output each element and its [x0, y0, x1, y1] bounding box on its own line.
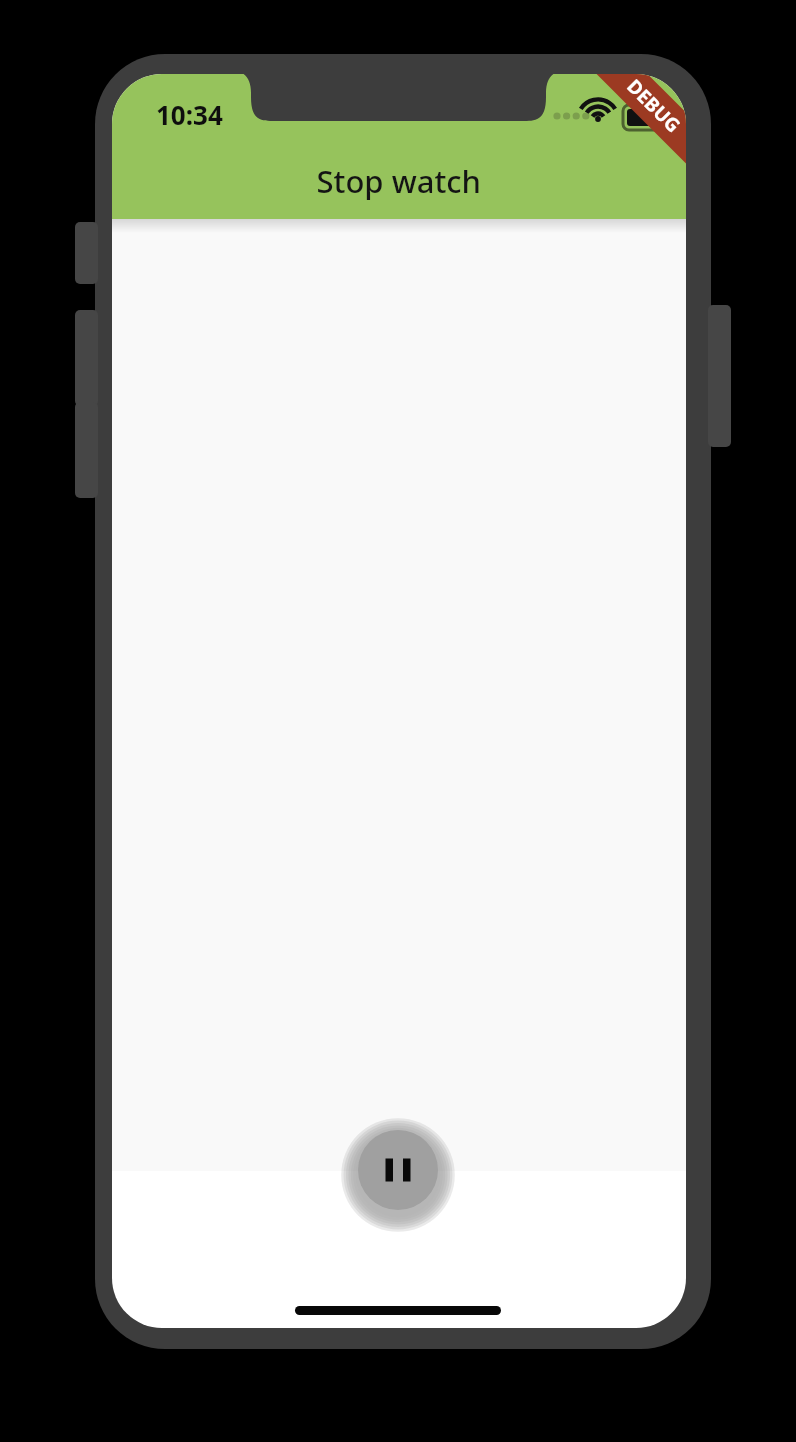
button[interactable]: Pause stopwatch [358, 1130, 438, 1210]
